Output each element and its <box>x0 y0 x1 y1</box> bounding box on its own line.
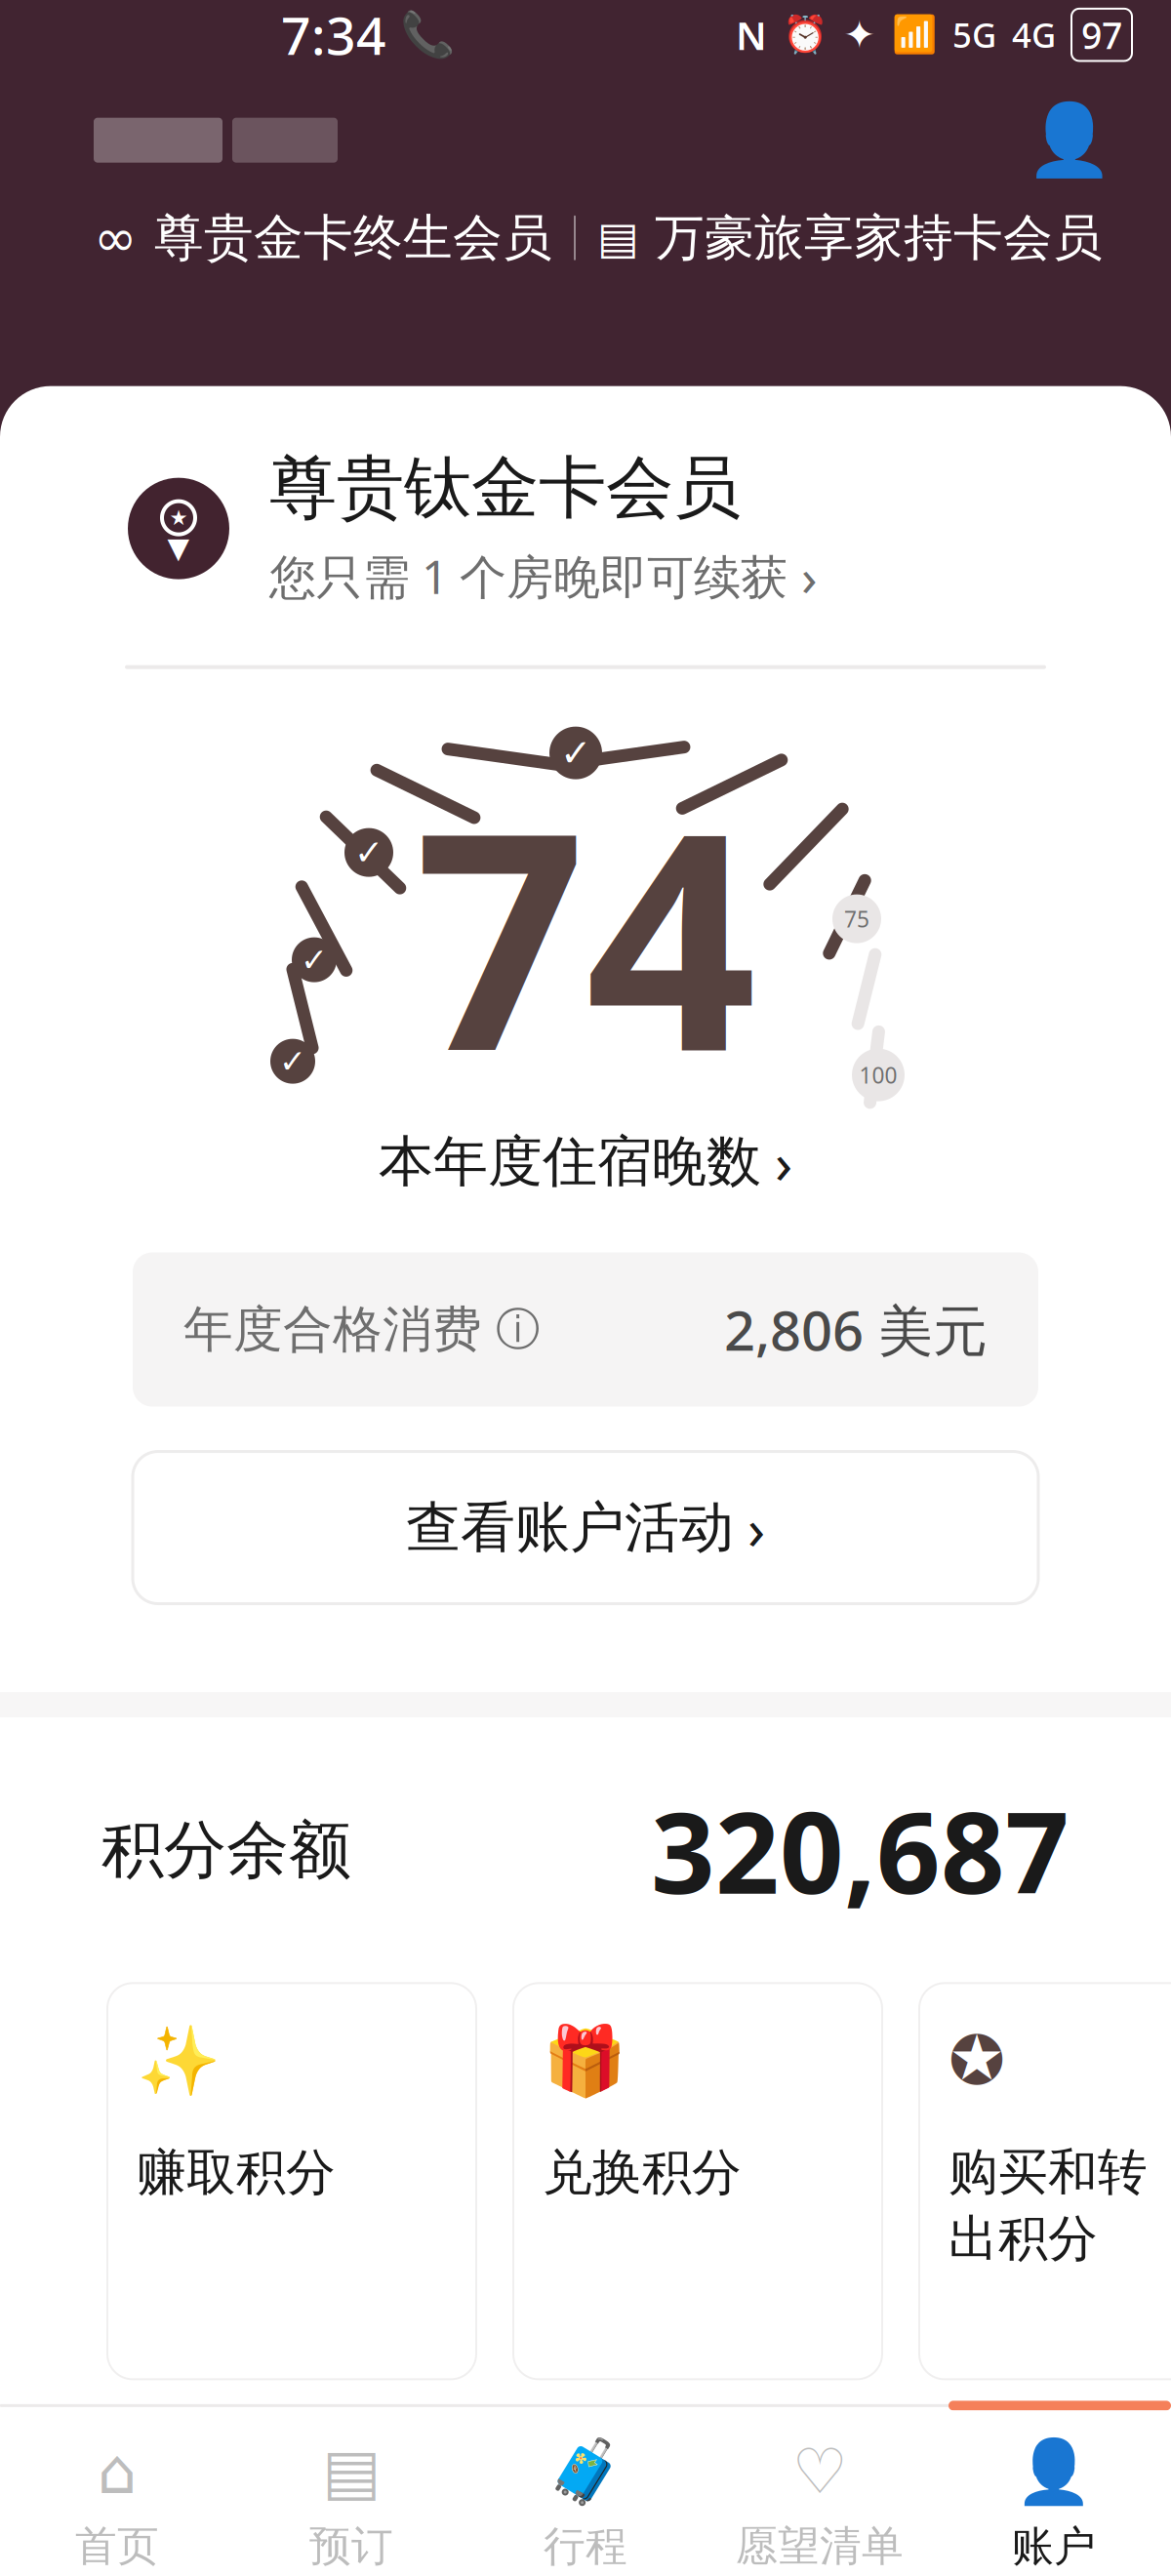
staticText: 首页 <box>75 2521 159 2572</box>
staticText: 账户 <box>1012 2521 1096 2572</box>
staticText: ✓ <box>279 1043 306 1080</box>
button[interactable]: 本年度住宿晚数 <box>379 1114 792 1209</box>
staticText: 4G <box>1012 12 1056 57</box>
staticText: 预订 <box>309 2521 393 2572</box>
staticText: › <box>775 1124 792 1200</box>
staticText: 2,806 美元 <box>724 1293 988 1366</box>
staticText: 购买和转 <box>949 2142 1148 2203</box>
staticText: 愿望清单 <box>736 2521 904 2572</box>
staticText: 🎁 <box>543 2022 626 2099</box>
staticText: 兑换积分 <box>543 2142 742 2203</box>
staticText: 本年度住宿晚数 <box>379 1128 761 1195</box>
staticText: ∞ <box>94 208 137 267</box>
staticText: ✦ <box>843 13 876 57</box>
staticText: 赚取积分 <box>137 2142 336 2203</box>
staticText: 100 <box>859 1060 897 1090</box>
button[interactable]: ★ <box>0 447 1171 611</box>
staticText: ♡ <box>792 2436 848 2507</box>
staticText: 尊贵钛金卡会员 <box>269 447 741 530</box>
staticText: › <box>801 541 818 610</box>
staticText: 尊贵金卡终生会员 <box>154 208 552 268</box>
staticText: 5G <box>952 12 996 57</box>
button[interactable]: ▤ <box>234 2411 468 2576</box>
staticText: 97 <box>1081 11 1122 59</box>
staticText: ✨ <box>137 2022 221 2099</box>
staticText: 7:34 <box>281 0 386 69</box>
staticText: ✓ <box>354 833 384 872</box>
staticText: ✓ <box>560 732 591 774</box>
staticText: ▼ <box>167 532 190 564</box>
button[interactable]: ♡ <box>703 2411 937 2576</box>
staticText: 出积分 <box>949 2208 1098 2269</box>
staticText: › <box>747 1490 765 1566</box>
staticText: 74 <box>415 736 756 1133</box>
staticText: 年度合格消费 <box>183 1299 482 1360</box>
staticText: ✓ <box>301 941 328 978</box>
staticText: ⓘ <box>496 1302 540 1357</box>
staticText: ⌂ <box>97 2436 137 2507</box>
staticText: 📶 <box>892 14 937 56</box>
button[interactable]: ✨ <box>107 1983 476 2379</box>
staticText: 查看账户活动 <box>406 1494 734 1561</box>
staticText: 行程 <box>544 2521 627 2572</box>
button[interactable]: 🧳 <box>468 2411 703 2576</box>
button[interactable]: 查看账户活动 <box>0 1451 1171 1604</box>
staticText: ▤ <box>322 2436 381 2507</box>
staticText: 万豪旅享家持卡会员 <box>655 208 1103 268</box>
staticText: 75 <box>844 904 869 934</box>
staticText: 👤 <box>1015 2436 1093 2507</box>
staticText: N <box>736 9 767 61</box>
staticText: 🧳 <box>546 2436 625 2507</box>
staticText: 积分余额 <box>101 1812 351 1889</box>
button[interactable]: 关于年度合格消费 <box>496 1302 540 1357</box>
staticText: ✪ <box>949 2022 1005 2099</box>
staticText: 您只需 1 个房晚即可续获 <box>269 545 787 607</box>
staticText: 📞 <box>400 10 455 60</box>
staticText: ⏰ <box>783 14 828 56</box>
button[interactable]: 👤 <box>937 2411 1171 2576</box>
staticText: ★ <box>169 506 188 530</box>
button[interactable]: ✪ <box>919 1983 1171 2379</box>
staticText: 320,687 <box>651 1776 1070 1925</box>
staticText: 👤 <box>1026 100 1113 180</box>
button[interactable]: ⌂ <box>0 2411 234 2576</box>
button[interactable]: Profile <box>1023 93 1116 187</box>
staticText: ▤ <box>597 213 639 263</box>
button[interactable]: 🎁 <box>513 1983 882 2379</box>
